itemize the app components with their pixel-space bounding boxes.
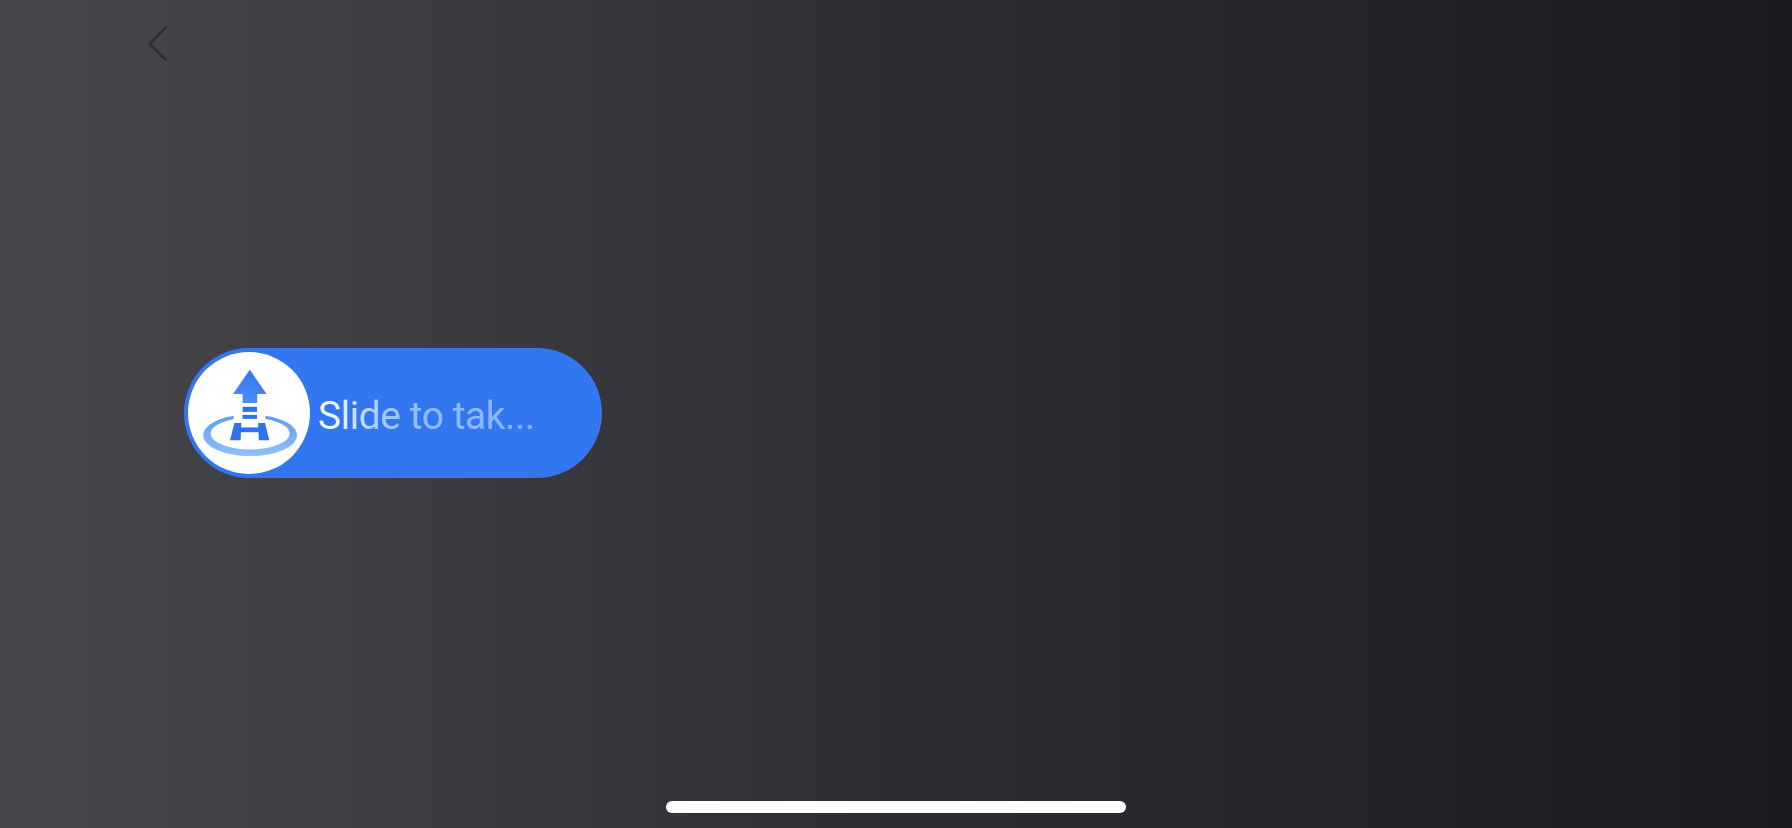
button[interactable]: Back <box>126 10 190 78</box>
button[interactable]: Slide to take off <box>184 348 602 478</box>
staticText: Slide to tak... <box>318 393 535 439</box>
button[interactable]: Take off <box>188 352 310 474</box>
